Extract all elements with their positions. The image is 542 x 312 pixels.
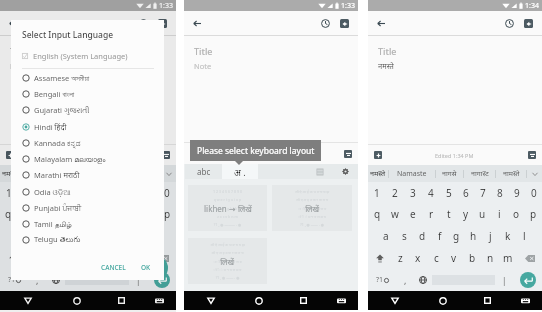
button[interactable]: abc bbox=[185, 164, 222, 179]
button[interactable]: t bbox=[440, 203, 457, 225]
button[interactable]: Back bbox=[184, 291, 237, 310]
button[interactable]: j bbox=[482, 225, 499, 247]
button[interactable]: Tamil தமிழ் bbox=[11, 216, 164, 232]
button[interactable]: Kannada ಕನ್ನಡ bbox=[11, 135, 164, 151]
button[interactable]: Hide keyboard bbox=[528, 151, 536, 159]
button[interactable]: g bbox=[77, 225, 95, 247]
button[interactable]: 0 bbox=[158, 182, 176, 203]
button[interactable]: Enter bbox=[520, 272, 536, 288]
button[interactable]: o bbox=[508, 203, 525, 225]
button[interactable]: Backspace bbox=[151, 247, 176, 269]
button[interactable]: a bbox=[377, 225, 395, 247]
button[interactable]: More suggestions bbox=[527, 165, 542, 182]
button[interactable]: 6 bbox=[457, 182, 474, 203]
button[interactable]: Switch keyboard bbox=[143, 291, 176, 310]
button[interactable]: b bbox=[463, 247, 481, 269]
button[interactable]: 1 2 3 4 5 6 7 8 9 0 bbox=[188, 185, 267, 231]
button[interactable]: Hindi हिंदी bbox=[11, 118, 164, 135]
button[interactable]: Backspace bbox=[517, 247, 542, 269]
button[interactable]: नागसे bbox=[436, 165, 463, 182]
button[interactable]: 4 bbox=[422, 182, 440, 203]
button[interactable]: v bbox=[445, 247, 463, 269]
button[interactable]: Recent apps bbox=[465, 291, 509, 310]
button[interactable]: p bbox=[525, 203, 542, 225]
button[interactable]: r bbox=[51, 203, 68, 225]
button[interactable]: Keyboard layouts bbox=[308, 164, 332, 179]
button[interactable]: z bbox=[392, 247, 409, 269]
button[interactable]: 8 bbox=[491, 182, 508, 203]
button[interactable]: e bbox=[34, 203, 51, 225]
button[interactable]: w bbox=[17, 203, 34, 225]
button[interactable]: r bbox=[422, 203, 440, 225]
button[interactable]: Shift bbox=[0, 247, 25, 269]
button[interactable]: Namaste bbox=[21, 165, 68, 182]
button[interactable]: 3 bbox=[404, 182, 422, 203]
button[interactable]: 3 bbox=[34, 182, 51, 203]
button[interactable]: Marathi मराठी bbox=[11, 167, 164, 183]
button[interactable]: 0 bbox=[525, 182, 542, 203]
button[interactable]: Home bbox=[55, 291, 99, 310]
button[interactable]: , bbox=[396, 269, 414, 291]
button[interactable]: Back bbox=[368, 291, 421, 310]
button[interactable]: Home bbox=[421, 291, 465, 310]
button[interactable]: OK bbox=[137, 260, 155, 275]
button[interactable]: Recent apps bbox=[281, 291, 325, 310]
button[interactable]: Malayalam മലയാളം bbox=[11, 151, 164, 167]
button[interactable]: Back bbox=[368, 11, 393, 35]
button[interactable]: y bbox=[457, 203, 474, 225]
button[interactable]: a bbox=[9, 225, 26, 247]
button[interactable]: नागास्ट bbox=[464, 165, 495, 182]
button[interactable]: e bbox=[404, 203, 422, 225]
button[interactable]: Punjabi ਪੰਜਾਬੀ bbox=[11, 200, 164, 216]
button[interactable]: औ ऐ आ ई ऊ भ ङ घ ध झ bbox=[272, 185, 352, 231]
button[interactable]: Settings bbox=[332, 164, 358, 179]
button[interactable]: i bbox=[491, 203, 508, 225]
button[interactable]: 5 bbox=[440, 182, 457, 203]
button[interactable]: Home bbox=[237, 291, 281, 310]
button[interactable]: Back bbox=[0, 291, 55, 310]
button[interactable]: Bengali বাংলা bbox=[11, 86, 164, 102]
button[interactable]: नमस्ते bbox=[0, 165, 20, 182]
button[interactable]: 1 bbox=[0, 182, 17, 203]
button[interactable]: l bbox=[516, 225, 533, 247]
button[interactable]: Namaste bbox=[389, 165, 435, 182]
button[interactable]: s bbox=[26, 225, 43, 247]
button[interactable]: n bbox=[115, 247, 133, 269]
button[interactable]: 7 bbox=[474, 182, 491, 203]
button[interactable]: n bbox=[481, 247, 499, 269]
button[interactable]: Switch keyboard bbox=[325, 291, 358, 310]
button[interactable]: m bbox=[499, 247, 517, 269]
button[interactable]: | bbox=[129, 269, 147, 291]
button[interactable]: Space bbox=[65, 275, 129, 285]
button[interactable]: h bbox=[465, 225, 482, 247]
button[interactable]: u bbox=[474, 203, 491, 225]
button[interactable]: Change language bbox=[47, 269, 65, 291]
button[interactable]: m bbox=[133, 247, 151, 269]
button[interactable]: c bbox=[427, 247, 445, 269]
button[interactable]: f bbox=[60, 225, 77, 247]
button[interactable]: Assamese অসমীয়া bbox=[11, 70, 164, 86]
button[interactable]: Reminder bbox=[499, 11, 519, 35]
button[interactable]: | bbox=[495, 269, 513, 291]
button[interactable]: p bbox=[158, 203, 176, 225]
button[interactable]: Enter bbox=[154, 272, 170, 288]
button[interactable]: w bbox=[386, 203, 404, 225]
button[interactable]: Hide keyboard bbox=[344, 150, 352, 158]
button[interactable]: Back bbox=[184, 11, 209, 35]
button[interactable]: g bbox=[448, 225, 465, 247]
button[interactable]: More suggestions bbox=[161, 165, 176, 182]
button[interactable]: b bbox=[97, 247, 115, 269]
